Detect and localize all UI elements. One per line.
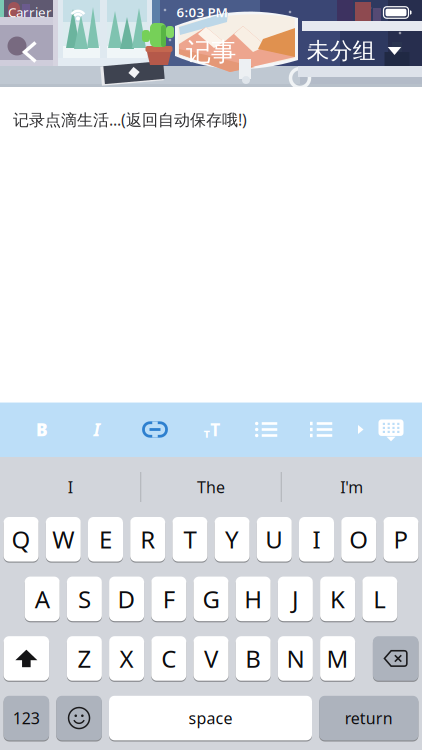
button[interactable]: U (257, 517, 292, 561)
staticText: I'm (340, 476, 363, 498)
button[interactable]: B (24, 409, 60, 449)
button[interactable]: V (193, 636, 228, 681)
button[interactable]: The (146, 465, 276, 509)
button[interactable]: E (88, 517, 123, 561)
button[interactable]: O (341, 517, 376, 561)
button[interactable]: G (193, 577, 228, 621)
staticText: E (99, 523, 112, 555)
button[interactable]: Z (67, 636, 102, 681)
staticText: т (204, 425, 210, 441)
staticText: J (292, 583, 299, 615)
staticText: 记录点滴生活...(返回自动保存哦!) (13, 109, 247, 130)
staticText: Z (77, 642, 91, 674)
button[interactable] (4, 636, 49, 681)
staticText: return (345, 707, 393, 729)
button[interactable]: I'm (287, 465, 417, 509)
button[interactable] (246, 409, 286, 449)
button[interactable]: S (67, 577, 102, 621)
button[interactable]: T (172, 517, 207, 561)
button[interactable]: B (236, 636, 271, 681)
staticText: P (393, 523, 408, 555)
button[interactable]: J (278, 577, 313, 621)
staticText: I (93, 418, 100, 441)
button[interactable]: space (109, 696, 312, 740)
button[interactable]: I (299, 517, 334, 561)
button[interactable] (373, 636, 418, 681)
staticText: L (373, 583, 386, 615)
staticText: V (204, 642, 218, 674)
staticText: C (161, 642, 176, 674)
button[interactable]: N (278, 636, 313, 681)
button[interactable]: K (320, 577, 355, 621)
staticText: Carrier (8, 3, 52, 21)
staticText: X (120, 642, 134, 674)
button[interactable] (135, 409, 175, 449)
staticText: A (35, 583, 50, 615)
staticText: S (78, 583, 91, 615)
button[interactable]: D (109, 577, 144, 621)
staticText: 记事 (186, 36, 236, 67)
button[interactable]: X (109, 636, 144, 681)
staticText: G (202, 583, 219, 615)
button[interactable] (350, 417, 372, 442)
button[interactable] (12, 31, 47, 72)
staticText: T (210, 418, 220, 441)
button[interactable]: I (5, 465, 135, 509)
staticText: 6:03 PM (176, 3, 227, 21)
staticText: F (163, 583, 175, 615)
button[interactable]: return (319, 696, 418, 740)
button[interactable]: 123 (4, 696, 49, 740)
staticText: I (312, 523, 320, 555)
button[interactable]: R (130, 517, 165, 561)
button[interactable]: 未分组 (307, 29, 401, 73)
staticText: B (36, 418, 48, 441)
button[interactable]: H (236, 577, 271, 621)
button[interactable] (56, 696, 102, 740)
staticText: Y (225, 523, 239, 555)
button[interactable]: A (25, 577, 60, 621)
staticText: I (68, 476, 73, 498)
button[interactable]: Y (215, 517, 250, 561)
staticText: M (327, 642, 349, 674)
button[interactable]: F (151, 577, 186, 621)
staticText: U (265, 523, 283, 555)
button[interactable]: M (320, 636, 355, 681)
staticText: 123 (13, 707, 40, 729)
staticText: D (118, 583, 136, 615)
staticText: K (330, 583, 345, 615)
staticText: T (183, 523, 196, 555)
staticText: The (197, 476, 225, 498)
button[interactable]: I (79, 409, 115, 449)
button[interactable]: C (151, 636, 186, 681)
staticText: N (286, 642, 304, 674)
staticText: W (52, 523, 74, 555)
staticText: H (244, 583, 262, 615)
button[interactable]: Q (4, 517, 39, 561)
staticText: O (349, 523, 368, 555)
button[interactable]: P (383, 517, 418, 561)
button[interactable]: W (46, 517, 81, 561)
button[interactable] (301, 409, 341, 449)
staticText: 未分组 (307, 37, 376, 65)
staticText: space (188, 707, 232, 729)
button[interactable] (371, 410, 411, 450)
staticText: R (140, 523, 155, 555)
staticText: Q (12, 523, 31, 555)
button[interactable]: т (192, 409, 232, 449)
button[interactable]: L (362, 577, 397, 621)
staticText: B (245, 642, 261, 674)
